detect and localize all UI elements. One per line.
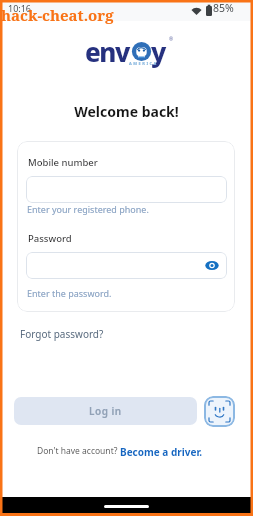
staticText: ® (169, 36, 174, 43)
staticText: Don't have account? (37, 445, 120, 457)
staticText: hack-cheat.org (1, 5, 114, 25)
button[interactable]: Become a driver. (120, 445, 203, 459)
staticText: env (85, 34, 129, 69)
button[interactable] (26, 252, 227, 279)
staticText: AMERICA (129, 61, 158, 66)
staticText: Mobile number (28, 156, 98, 169)
staticText: Enter the password. (27, 287, 112, 299)
staticText: 10:16 (8, 2, 32, 14)
button[interactable]: Log in (14, 397, 197, 425)
staticText: Password (28, 232, 72, 245)
staticText: Enter your registered phone. (27, 203, 149, 215)
staticText: Log in (89, 404, 122, 418)
button[interactable] (204, 396, 235, 427)
button[interactable] (26, 176, 227, 203)
button[interactable] (205, 260, 219, 271)
staticText: 85% (213, 1, 234, 15)
staticText: Welcome back! (0, 102, 253, 121)
staticText: y (151, 34, 167, 69)
button[interactable]: Forgot password? (20, 327, 104, 341)
